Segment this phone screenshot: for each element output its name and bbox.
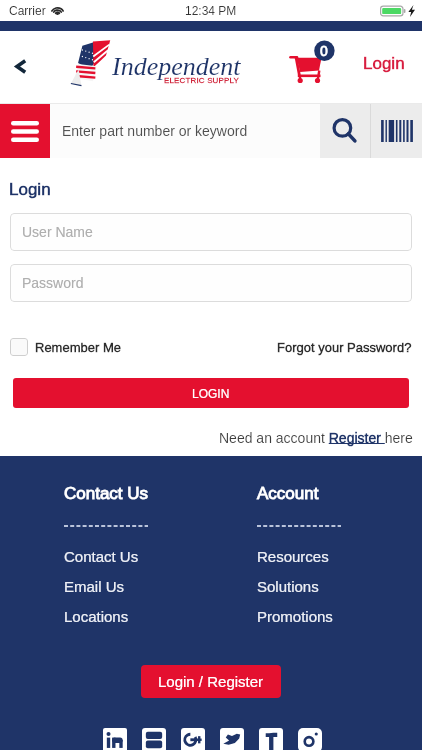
- button[interactable]: Contact Us: [64, 548, 139, 565]
- button[interactable]: Facebook: [259, 728, 283, 750]
- button[interactable]: Password: [10, 264, 412, 302]
- staticText: Need an account Register here: [219, 430, 413, 446]
- button[interactable]: Instagram: [298, 728, 322, 750]
- button[interactable]: YouTube: [142, 728, 166, 750]
- staticText: Password: [22, 275, 84, 291]
- button[interactable]: Google Plus: [181, 728, 205, 750]
- button[interactable]: Locations: [64, 608, 129, 625]
- staticText: Solutions: [257, 578, 319, 595]
- button[interactable]: Need an account Register here: [219, 430, 413, 446]
- staticText: Locations: [64, 608, 129, 625]
- staticText: Email Us: [64, 578, 125, 595]
- button[interactable]: Resources: [257, 548, 329, 565]
- button[interactable]: Search: [320, 104, 370, 158]
- button[interactable]: LOGIN: [13, 378, 409, 408]
- staticText: Carrier: [9, 4, 46, 17]
- button[interactable]: Menu: [0, 104, 50, 158]
- button[interactable]: Enter part number or keyword: [50, 104, 320, 158]
- staticText: ELECTRIC SUPPLY: [164, 76, 240, 85]
- button[interactable]: Login / Register: [141, 665, 281, 698]
- button[interactable]: Back: [2, 47, 40, 85]
- button[interactable]: Promotions: [257, 608, 333, 625]
- staticText: Contact Us: [64, 484, 149, 503]
- staticText: Contact Us: [64, 548, 139, 565]
- staticText: Enter part number or keyword: [62, 123, 248, 139]
- button[interactable]: Solutions: [257, 578, 319, 595]
- staticText: User Name: [22, 224, 93, 240]
- button[interactable]: Login: [357, 48, 411, 79]
- button[interactable]: Scan barcode: [371, 104, 422, 158]
- staticText: Login / Register: [158, 673, 264, 690]
- button[interactable]: Email Us: [64, 578, 125, 595]
- staticText: Remember Me: [35, 340, 121, 355]
- button[interactable]: User Name: [10, 213, 412, 251]
- staticText: 12:34 PM: [185, 4, 237, 17]
- staticText: Resources: [257, 548, 329, 565]
- button[interactable]: Twitter: [220, 728, 244, 750]
- staticText: Login: [363, 54, 405, 73]
- button[interactable]: Forgot your Password?: [277, 338, 412, 357]
- button[interactable]: Remember Me: [10, 336, 121, 358]
- staticText: Account: [257, 484, 319, 503]
- button[interactable]: Shopping cart: [286, 45, 338, 93]
- staticText: Independent: [112, 52, 241, 81]
- staticText: Forgot your Password?: [277, 340, 412, 355]
- staticText: Promotions: [257, 608, 333, 625]
- button[interactable]: LinkedIn: [103, 728, 127, 750]
- staticText: 0: [320, 43, 328, 59]
- staticText: Login: [9, 180, 51, 199]
- staticText: LOGIN: [192, 387, 230, 400]
